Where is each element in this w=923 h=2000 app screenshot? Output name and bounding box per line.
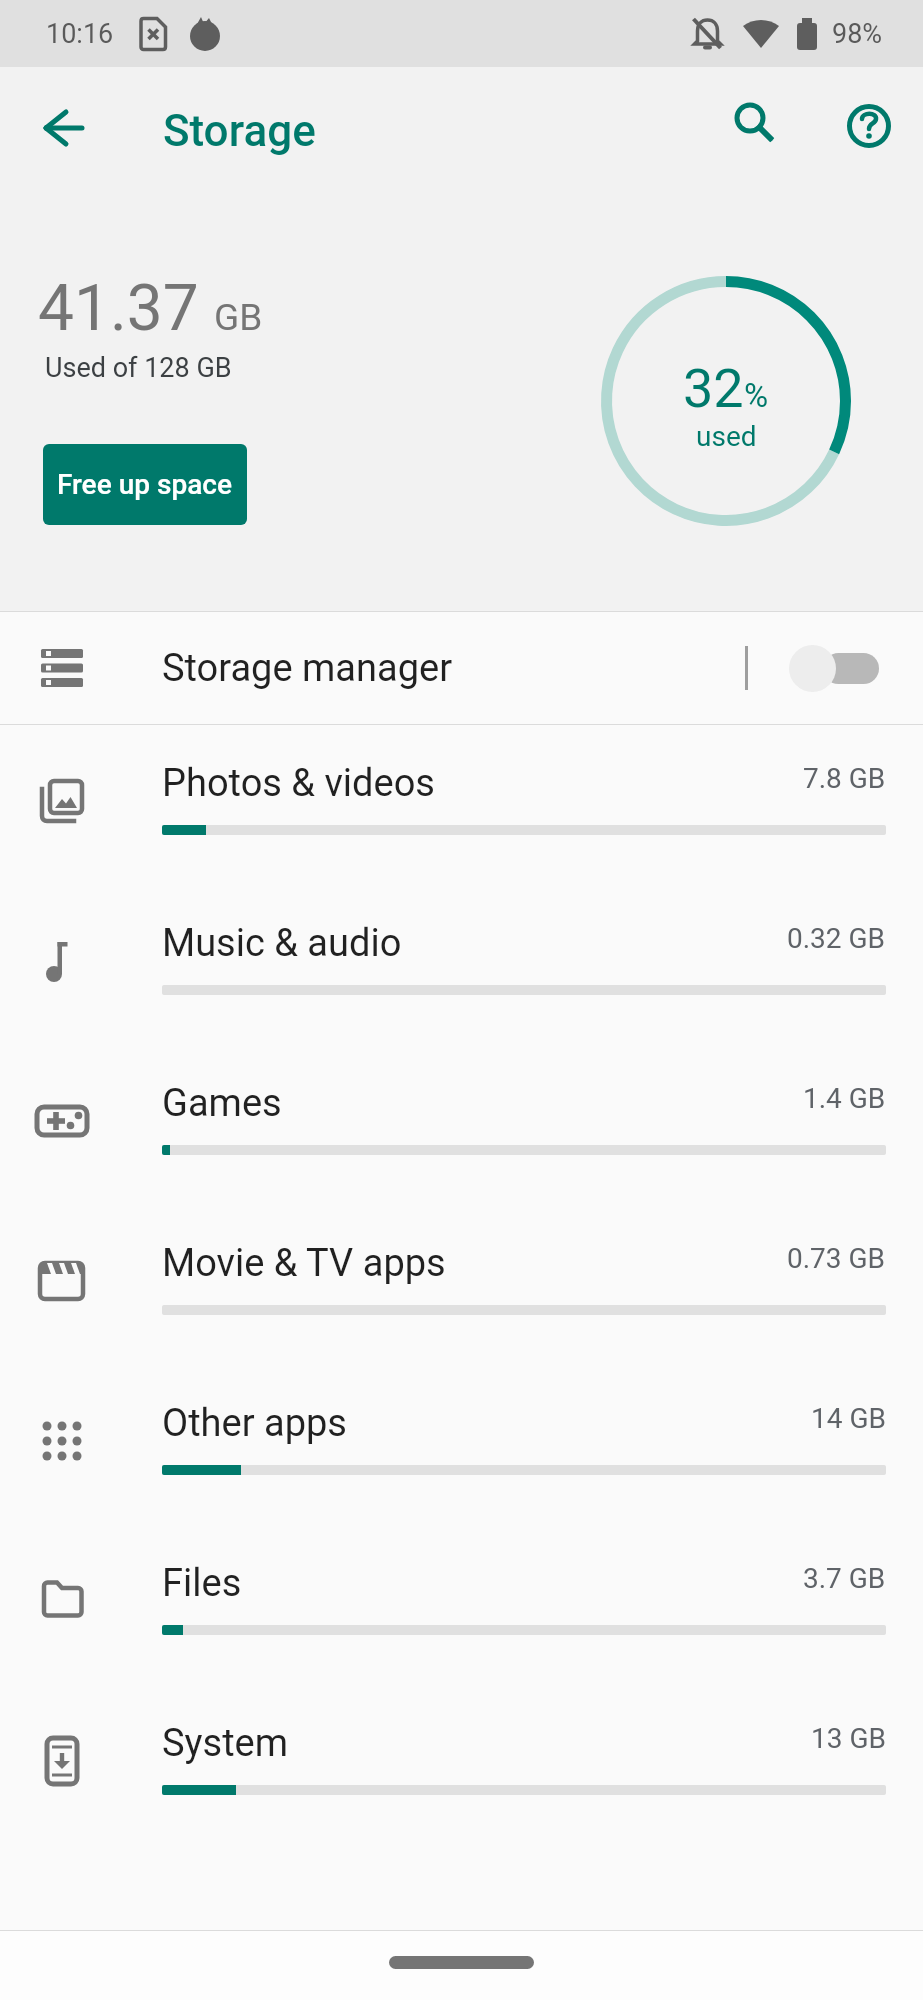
- staticText: 1.4 GB: [803, 1082, 886, 1115]
- button[interactable]: Movie & TV apps: [0, 1205, 923, 1365]
- staticText: 98%: [832, 18, 883, 50]
- staticText: Free up space: [57, 468, 233, 501]
- staticText: 3.7 GB: [803, 1562, 886, 1595]
- button[interactable]: [789, 644, 862, 692]
- staticText: 14 GB: [811, 1402, 886, 1435]
- staticText: System: [162, 1721, 289, 1766]
- button[interactable]: System: [0, 1685, 923, 1845]
- staticText: Other apps: [162, 1401, 347, 1446]
- button[interactable]: Photos & videos: [0, 725, 923, 885]
- staticText: 41.37: [38, 271, 199, 346]
- staticText: Files: [162, 1561, 242, 1606]
- staticText: 13 GB: [811, 1722, 886, 1755]
- staticText: used: [696, 420, 757, 453]
- staticText: Storage: [163, 105, 316, 157]
- staticText: Movie & TV apps: [162, 1241, 446, 1286]
- button[interactable]: [728, 96, 780, 148]
- button[interactable]: Games: [0, 1045, 923, 1205]
- staticText: Music & audio: [162, 921, 402, 966]
- staticText: 10:16: [46, 18, 114, 50]
- staticText: 0.73 GB: [787, 1242, 886, 1275]
- button[interactable]: [38, 102, 90, 154]
- button[interactable]: Storage manager: [0, 612, 923, 724]
- staticText: GB: [214, 296, 263, 339]
- button[interactable]: Music & audio: [0, 885, 923, 1045]
- staticText: Storage manager: [162, 646, 453, 691]
- staticText: Used of 128 GB: [45, 352, 232, 384]
- button[interactable]: Other apps: [0, 1365, 923, 1525]
- button[interactable]: [389, 1956, 534, 1969]
- staticText: 0.32 GB: [787, 922, 886, 955]
- button[interactable]: Free up space: [43, 444, 247, 525]
- staticText: Photos & videos: [162, 761, 435, 806]
- staticText: 32: [683, 357, 744, 420]
- staticText: Games: [162, 1081, 282, 1126]
- staticText: 7.8 GB: [803, 762, 886, 795]
- button[interactable]: [843, 100, 895, 152]
- staticText: %: [744, 376, 769, 415]
- button[interactable]: Files: [0, 1525, 923, 1685]
